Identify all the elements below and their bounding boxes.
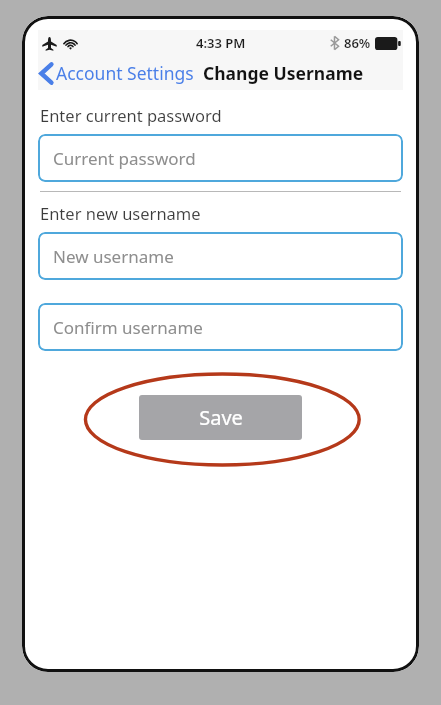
button[interactable]: Current password [38,134,403,182]
staticText: 4:33 PM [196,34,246,52]
other: Back [40,63,53,84]
button[interactable]: Back [38,59,196,87]
staticText: New username [53,245,174,268]
button[interactable]: Confirm username [38,303,403,351]
staticText: Enter current password [40,104,222,126]
staticText: Account Settings [56,61,194,85]
staticText: Confirm username [53,316,203,339]
button[interactable]: New username [38,232,403,280]
staticText: Change Username [203,61,364,85]
button[interactable]: Save [139,395,302,440]
staticText: Save [199,404,243,431]
staticText: Enter new username [40,202,201,224]
staticText: 86% [344,34,371,52]
staticText: Current password [53,147,196,170]
